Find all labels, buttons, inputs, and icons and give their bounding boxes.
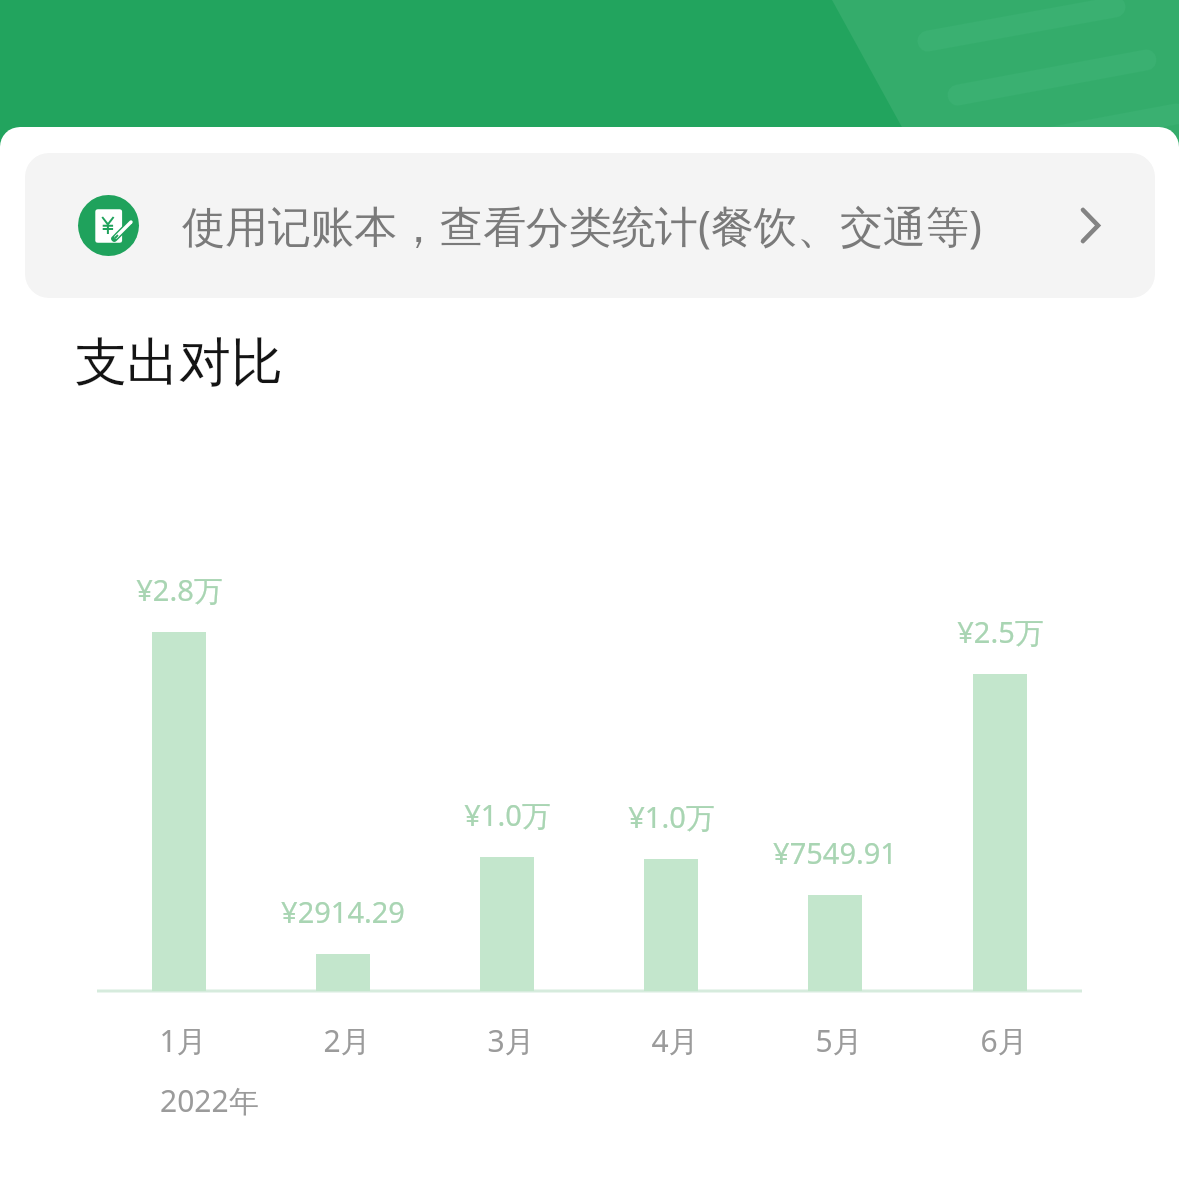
staticText: ¥1.0万 — [464, 795, 551, 835]
staticText: 1月 — [159, 1020, 207, 1061]
staticText: 支出对比 — [75, 330, 283, 396]
other: 查看分类统计 — [1080, 208, 1101, 243]
button[interactable]: 使用记账本，查看分类统计(餐饮、交通等) — [25, 153, 1155, 298]
staticText: 3月 — [487, 1020, 535, 1061]
staticText: 6月 — [980, 1020, 1028, 1061]
staticText: 使用记账本，查看分类统计(餐饮、交通等) — [182, 196, 982, 255]
staticText: 2月 — [323, 1020, 371, 1061]
staticText: 5月 — [815, 1020, 863, 1061]
staticText: ¥7549.91 — [773, 833, 897, 872]
staticText: ¥1.0万 — [628, 797, 715, 837]
staticText: 4月 — [651, 1020, 699, 1061]
staticText: ¥2.5万 — [957, 612, 1044, 652]
staticText: ¥2.8万 — [136, 570, 223, 610]
staticText: ¥2914.29 — [281, 892, 405, 931]
staticText: 2022年 — [160, 1080, 259, 1121]
